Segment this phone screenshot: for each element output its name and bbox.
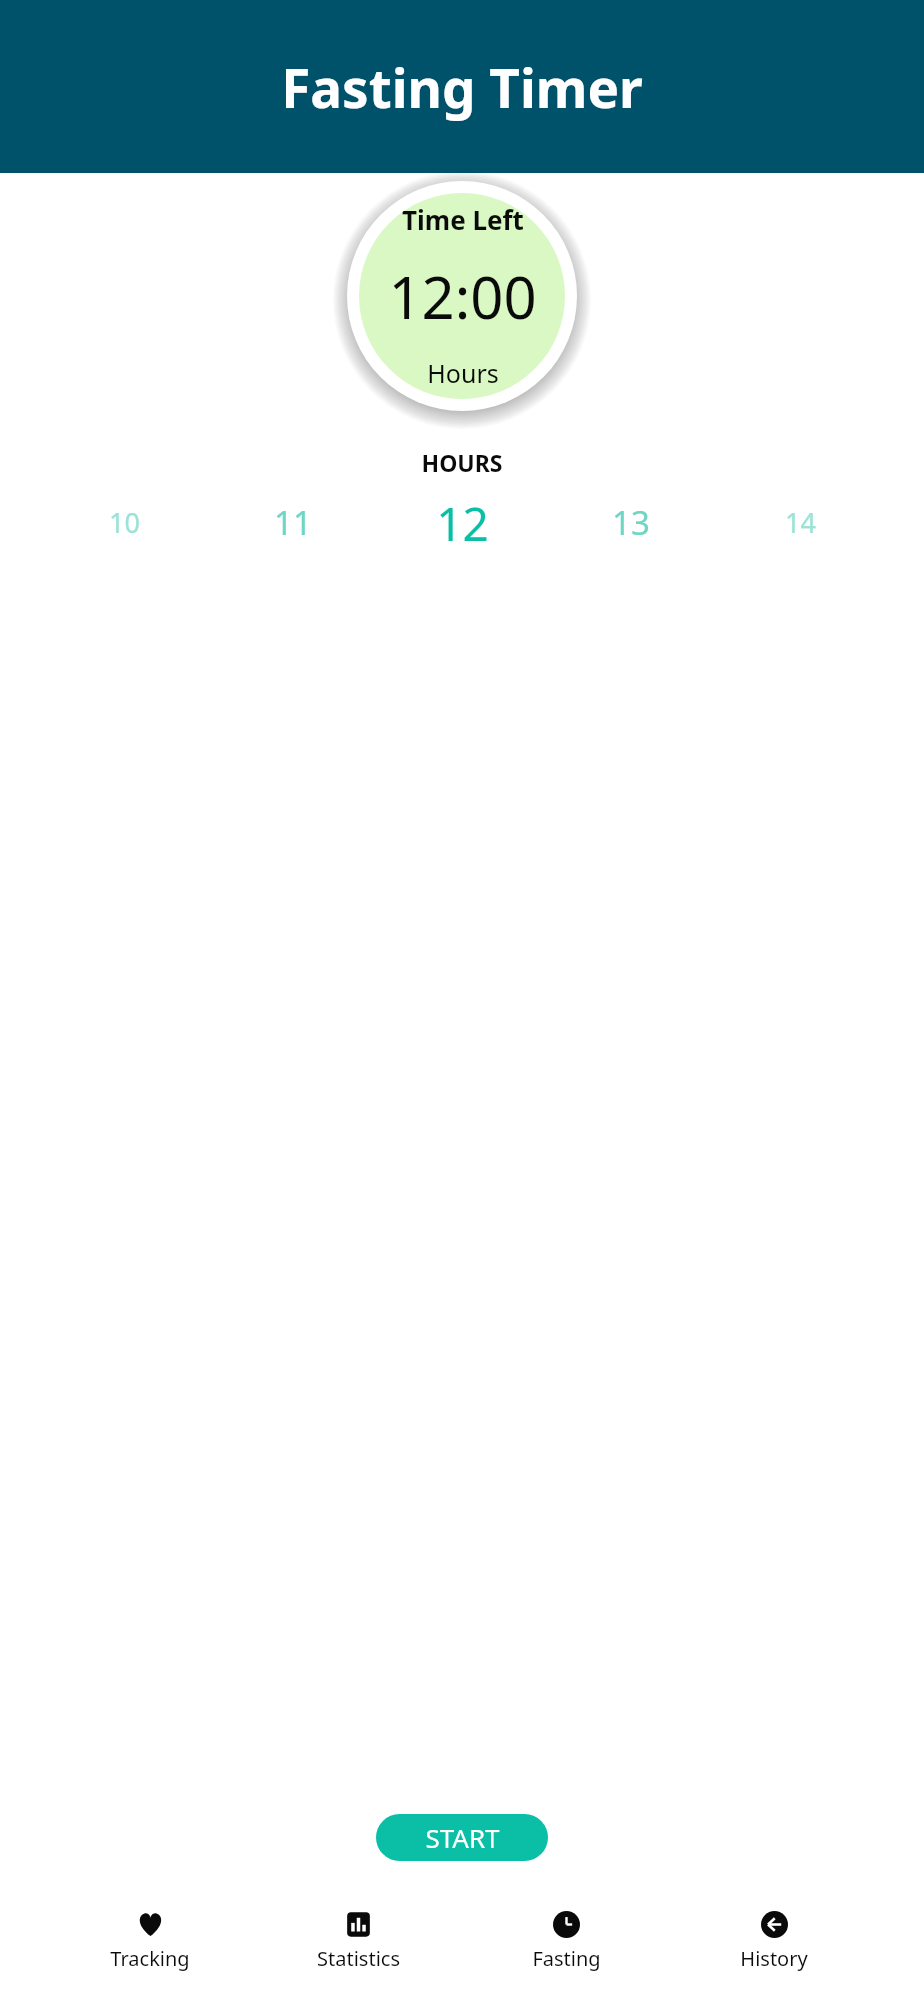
other: Tracking [137,1911,164,1938]
button[interactable]: 12 [417,492,507,552]
other: Fasting [553,1911,580,1938]
staticText: 10 [109,504,140,541]
staticText: Fasting [532,1945,601,1972]
other: History [761,1911,788,1938]
staticText: Fasting Timer [281,51,643,123]
other: Statistics [345,1911,372,1938]
button[interactable]: 11 [248,492,338,552]
button[interactable]: Fasting [508,1907,624,1976]
staticText: 12:00 [388,257,537,336]
staticText: Time Left [402,202,524,237]
button[interactable]: History [716,1907,832,1976]
button[interactable]: Statistics [300,1907,416,1976]
button[interactable]: START [376,1814,548,1861]
button[interactable]: Tracking [92,1907,208,1976]
staticText: History [740,1945,808,1972]
button[interactable]: 10 [79,492,169,552]
staticText: 13 [612,500,650,545]
staticText: 12 [436,492,489,552]
staticText: 11 [274,500,312,545]
staticText: HOURS [0,447,924,478]
staticText: Hours [427,356,499,390]
button[interactable]: 14 [755,492,845,552]
staticText: 14 [785,504,816,541]
staticText: Statistics [317,1945,400,1972]
staticText: START [425,1820,500,1855]
staticText: Tracking [110,1945,190,1972]
button[interactable]: 13 [586,492,676,552]
